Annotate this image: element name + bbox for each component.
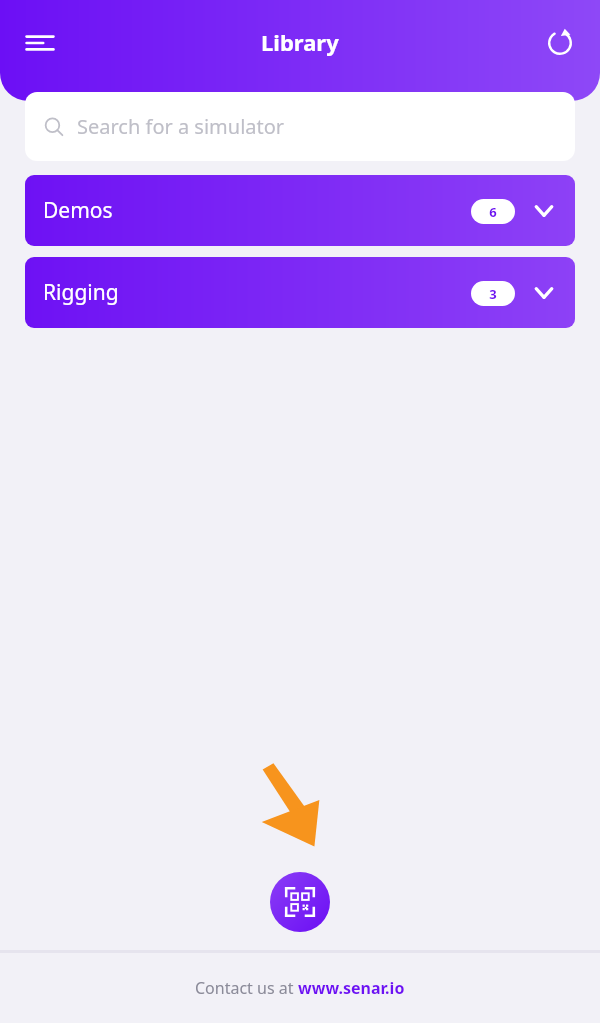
- button[interactable]: Demos: [25, 175, 575, 246]
- button[interactable]: Menu: [12, 15, 68, 71]
- staticText: Contact us at: [195, 977, 298, 999]
- button[interactable]: Search for a simulator: [25, 92, 575, 161]
- staticText: Rigging: [43, 278, 119, 307]
- staticText: Search for a simulator: [77, 113, 285, 140]
- button[interactable]: Scan QR code: [270, 872, 330, 932]
- button[interactable]: Refresh: [532, 15, 588, 71]
- button[interactable]: Contact us at: [0, 953, 600, 1023]
- button[interactable]: Rigging: [25, 257, 575, 328]
- staticText: Demos: [43, 196, 113, 225]
- staticText: Library: [261, 27, 339, 57]
- staticText: www.senar.io: [298, 977, 405, 999]
- staticText: 3: [489, 285, 497, 303]
- staticText: 6: [489, 203, 497, 221]
